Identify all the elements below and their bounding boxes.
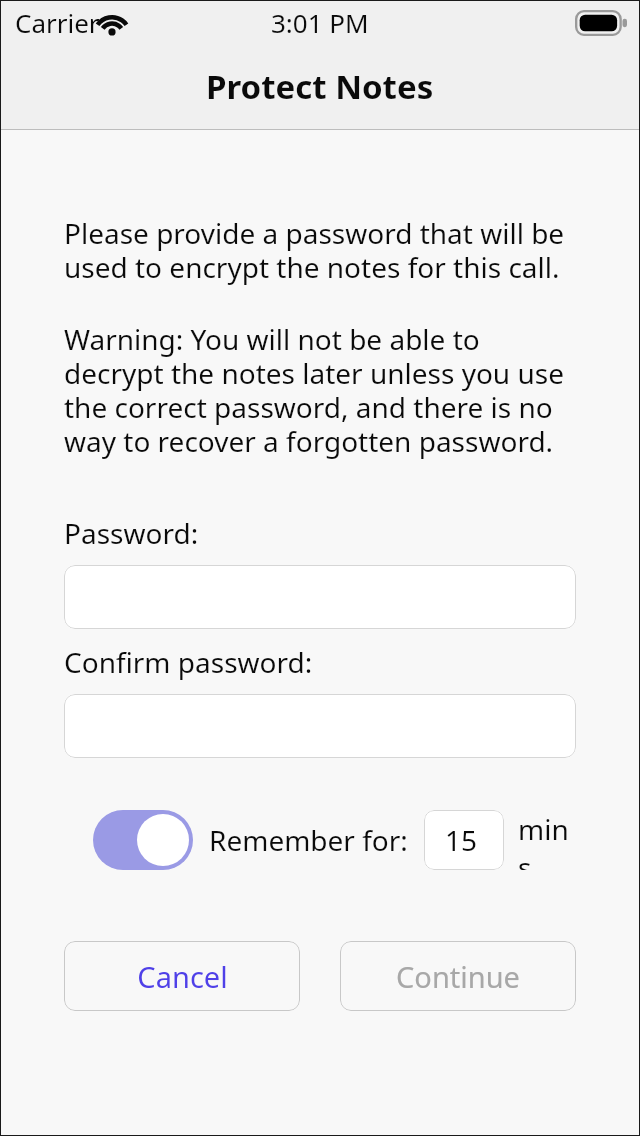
- button[interactable]: Cancel: [64, 941, 300, 1011]
- staticText: Warning: You will not be able to decrypt…: [64, 320, 564, 460]
- staticText: 3:01 PM: [271, 5, 369, 40]
- button[interactable]: Continue: [340, 941, 576, 1011]
- button[interactable]: Password input: [64, 565, 576, 629]
- staticText: Cancel: [137, 957, 228, 996]
- button[interactable]: Password input: [64, 694, 576, 758]
- staticText: Continue: [396, 957, 520, 996]
- staticText: Protect Notes: [206, 64, 434, 109]
- button[interactable]: Remember password toggle: [93, 810, 193, 870]
- staticText: Password:: [64, 514, 199, 552]
- button[interactable]: 15: [424, 810, 504, 870]
- staticText: Confirm password:: [64, 643, 313, 681]
- staticText: Carrier: [15, 5, 100, 40]
- staticText: mins: [518, 810, 576, 870]
- staticText: Please provide a password that will be u…: [64, 214, 565, 286]
- staticText: Remember for:: [209, 821, 408, 859]
- staticText: 15: [445, 821, 478, 859]
